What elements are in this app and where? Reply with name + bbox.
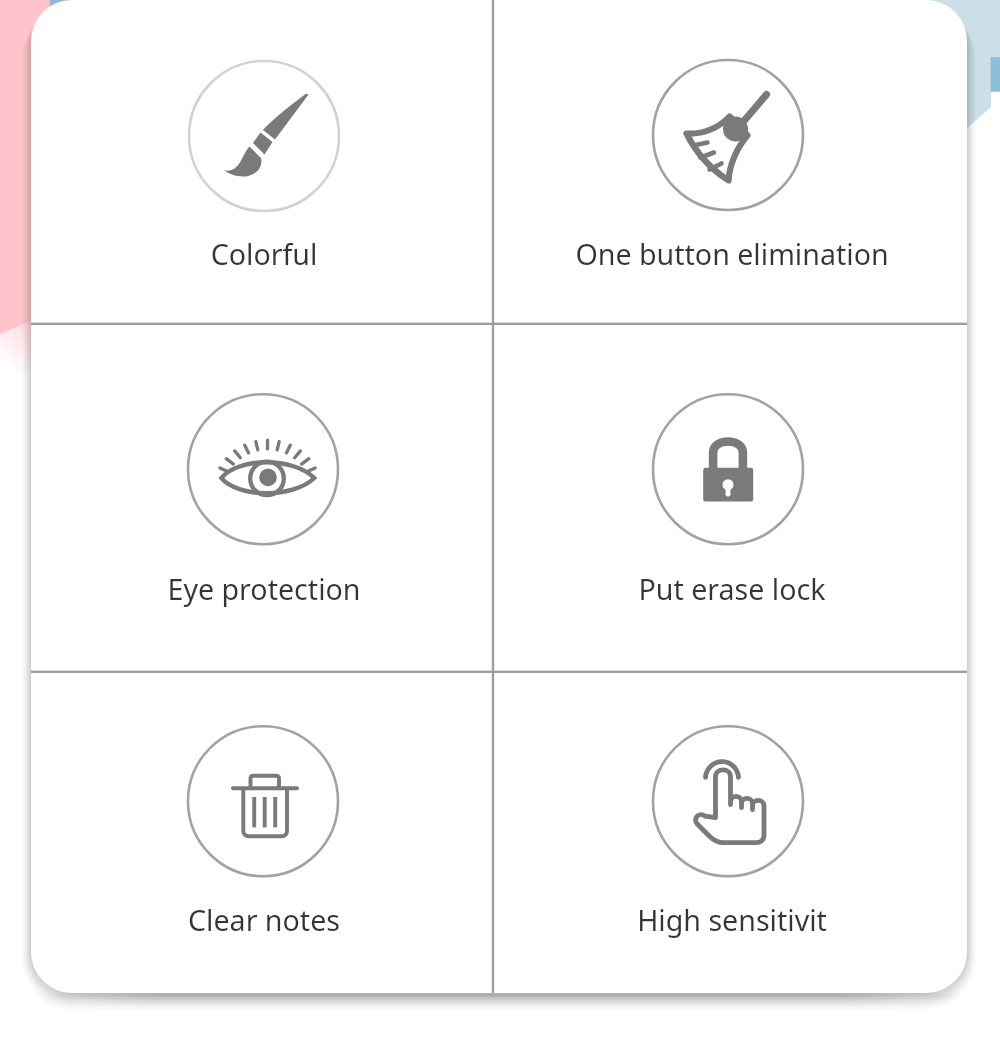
button[interactable]: Colorful xyxy=(31,0,493,324)
button[interactable]: High sensitivity xyxy=(493,672,967,993)
button[interactable]: Put erase lock xyxy=(493,324,967,672)
staticText: Eye protection xyxy=(33,569,495,608)
staticText: Clear notes xyxy=(33,900,495,939)
staticText: High sensitivit xyxy=(495,900,969,939)
staticText: Put erase lock xyxy=(495,569,969,608)
button[interactable]: Clear notes xyxy=(31,672,493,993)
staticText: Colorful xyxy=(33,234,495,273)
button[interactable]: One button elimination xyxy=(493,0,967,324)
staticText: One button elimination xyxy=(495,234,969,273)
button[interactable]: Eye protection xyxy=(31,324,493,672)
